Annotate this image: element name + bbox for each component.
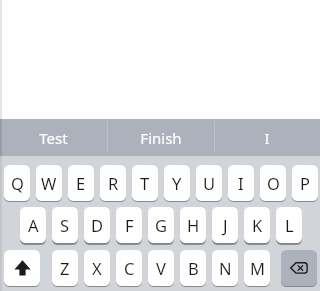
staticText: M [250, 257, 265, 279]
staticText: G [155, 214, 168, 236]
button[interactable]: L [276, 207, 302, 243]
staticText: S [60, 214, 70, 236]
staticText: K [252, 214, 263, 236]
staticText: C [124, 257, 135, 279]
button[interactable]: D [84, 207, 110, 243]
staticText: N [219, 257, 232, 279]
staticText: W [41, 172, 57, 194]
button[interactable]: N [212, 250, 238, 286]
staticText: X [92, 257, 102, 279]
button[interactable]: F [116, 207, 142, 243]
staticText: A [28, 214, 39, 236]
button[interactable]: A [20, 207, 46, 243]
button[interactable]: Test [0, 119, 107, 156]
button[interactable]: V [148, 250, 174, 286]
staticText: Q [11, 172, 24, 194]
button[interactable]: T [132, 165, 158, 201]
staticText: Finish [140, 128, 182, 148]
staticText: Y [172, 172, 182, 194]
button[interactable]: X [84, 250, 110, 286]
button[interactable] [4, 250, 40, 286]
staticText: Test [39, 128, 68, 148]
button[interactable]: R [100, 165, 126, 201]
button[interactable]: Finish [107, 119, 214, 156]
staticText: O [267, 172, 280, 194]
button[interactable]: U [196, 165, 222, 201]
button[interactable]: C [116, 250, 142, 286]
button[interactable]: B [180, 250, 206, 286]
staticText: V [156, 257, 166, 279]
staticText: Z [60, 257, 70, 279]
button[interactable]: W [36, 165, 62, 201]
staticText: T [140, 172, 150, 194]
button[interactable]: E [68, 165, 94, 201]
button[interactable]: H [180, 207, 206, 243]
button[interactable]: J [212, 207, 238, 243]
staticText: J [223, 214, 228, 236]
staticText: D [91, 214, 104, 236]
staticText: H [187, 214, 200, 236]
button[interactable]: I [228, 165, 254, 201]
staticText: E [76, 172, 86, 194]
button[interactable]: S [52, 207, 78, 243]
button[interactable]: P [292, 165, 318, 201]
staticText: I [264, 128, 270, 148]
staticText: L [285, 214, 294, 236]
button[interactable]: Y [164, 165, 190, 201]
staticText: I [238, 172, 244, 194]
button[interactable]: G [148, 207, 174, 243]
staticText: F [125, 214, 134, 236]
button[interactable]: M [244, 250, 270, 286]
staticText: P [300, 172, 310, 194]
staticText: R [108, 172, 119, 194]
button[interactable]: K [244, 207, 270, 243]
button[interactable]: Z [52, 250, 78, 286]
button[interactable]: Q [4, 165, 30, 201]
staticText: U [203, 172, 216, 194]
button[interactable]: O [260, 165, 286, 201]
staticText: B [188, 257, 199, 279]
button[interactable] [281, 250, 317, 286]
button[interactable]: I [213, 119, 320, 156]
